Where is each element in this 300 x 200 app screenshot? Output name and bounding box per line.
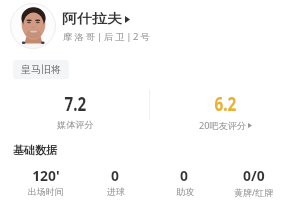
staticText: 120' [32,166,60,185]
staticText: 基础数据 [13,143,57,157]
button[interactable]: Player photo [10,3,56,49]
staticText: 0 [180,166,189,185]
staticText: 6.2 [214,91,236,116]
button[interactable]: 7.2 [0,90,150,131]
staticText: 0/0 [243,166,265,185]
staticText: 进球 [107,186,125,197]
staticText: 0 [111,166,120,185]
button[interactable]: 6.2 [150,90,300,132]
button[interactable]: 0 [150,166,219,197]
staticText: 出场时间 [28,186,64,197]
staticText: 助攻 [176,186,194,197]
staticText: 20吧友评分 [199,119,247,132]
button[interactable]: 0/0 [219,166,288,198]
staticText: 阿什拉夫 [62,11,122,28]
staticText: 皇马旧将 [21,63,61,76]
staticText: 媒体评分 [57,119,94,131]
staticText: 7.2 [64,91,86,116]
staticText: 摩洛哥|后卫|2号 [63,31,152,42]
button[interactable]: 阿什拉夫 [62,10,130,29]
staticText: 黄牌/红牌 [234,186,274,198]
button[interactable]: 皇马旧将 [13,60,69,79]
button[interactable]: 120' [11,166,81,197]
button[interactable]: 0 [81,166,150,197]
